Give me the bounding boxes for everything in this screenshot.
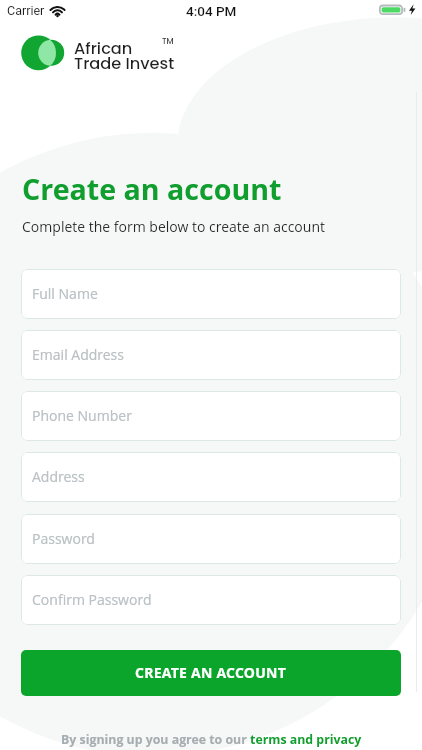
staticText: Address [32, 467, 85, 486]
button[interactable]: CREATE AN ACCOUNT [21, 650, 401, 696]
button[interactable]: Full Name [21, 269, 401, 319]
staticText: Password [32, 529, 95, 548]
staticText: CREATE AN ACCOUNT [135, 663, 287, 682]
button[interactable]: By signing up you agree to our terms and… [0, 731, 422, 748]
staticText: Confirm Password [32, 590, 152, 609]
button[interactable]: Password [21, 514, 401, 564]
button[interactable]: Phone Number [21, 391, 401, 441]
staticText: Full Name [32, 284, 98, 303]
staticText: Trade Invest [74, 52, 175, 75]
staticText: 4:04 PM [186, 3, 237, 19]
staticText: Email Address [32, 345, 124, 364]
button[interactable]: Address [21, 452, 401, 502]
staticText: Carrier [7, 3, 45, 18]
button[interactable]: Email Address [21, 330, 401, 380]
staticText: Complete the form below to create an acc… [22, 217, 325, 236]
staticText: By signing up you agree to our terms and… [61, 731, 362, 748]
staticText: African [74, 37, 133, 60]
staticText: Phone Number [32, 406, 132, 425]
staticText: Create an account [22, 169, 282, 208]
button[interactable]: Confirm Password [21, 575, 401, 625]
staticText: TM [162, 36, 174, 47]
